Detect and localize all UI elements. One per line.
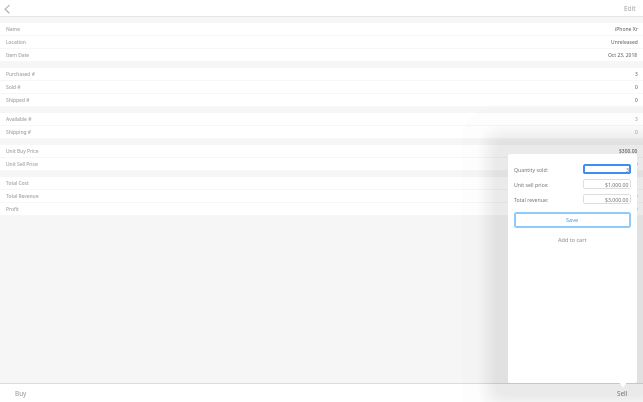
button[interactable]: Back [0,1,16,17]
button[interactable]: Purchased # [0,68,643,81]
button[interactable]: Sell [321,384,643,402]
button[interactable]: Shipping # [0,126,643,139]
button[interactable]: Total Cost [0,177,643,190]
staticText: Add to cart [558,236,587,243]
staticText: 0 [635,97,638,104]
staticText: Unreleased [611,39,638,46]
staticText: Total Revenue [6,193,39,200]
staticText: Purchased # [6,71,35,78]
staticText: $3,000.00 [615,193,638,200]
staticText: $900.00 [619,180,638,187]
staticText: 3 [635,116,638,123]
button[interactable]: Available # [0,113,643,126]
staticText: $3,000.00 [605,196,629,203]
staticText: Save [566,216,579,224]
staticText: 0 [635,84,638,91]
button[interactable]: Sold # [0,81,643,94]
button[interactable]: Location [0,36,643,49]
staticText: Quantity sold: [514,166,548,173]
button[interactable]: $1,000.00 [583,179,631,189]
button[interactable]: Total Revenue [0,190,643,203]
staticText: 3 [635,71,638,78]
staticText: Sell [617,389,628,398]
staticText: $1,000.00 [605,181,629,188]
staticText: Edit [624,4,636,13]
button[interactable]: 3 [583,164,631,174]
staticText: Sold # [6,84,21,91]
button[interactable]: Unit Sell Price [0,158,643,171]
staticText: Unit Buy Price [6,148,39,155]
staticText: $2,100.00 [615,206,638,213]
staticText: Shipped # [6,97,30,104]
staticText: Name [6,26,20,33]
button[interactable]: Name [0,23,643,36]
button[interactable]: Profit [0,203,643,216]
button[interactable]: Shipped # [0,94,643,107]
button[interactable]: Unit Buy Price [0,145,643,158]
button[interactable]: Save [514,212,631,228]
button[interactable]: Edit [624,4,636,13]
staticText: Unit Sell Price [6,161,38,168]
button[interactable]: Buy [0,384,321,402]
staticText: Total revenue: [514,196,549,203]
staticText: Total Cost [6,180,29,187]
staticText: Oct 23, 2018 [608,52,638,59]
staticText: Shipping # [6,129,31,136]
button[interactable]: Item Date [0,49,643,62]
staticText: 3 [626,166,629,173]
staticText: Location [6,39,26,46]
staticText: Item Date [6,52,30,59]
staticText: Buy [15,389,27,398]
staticText: iPhone Xr [615,26,638,33]
staticText: Profit [6,206,19,213]
staticText: Available # [6,116,32,123]
staticText: 0 [635,129,638,136]
button[interactable]: Add to cart [514,228,631,250]
staticText: $300.00 [619,148,638,155]
staticText: Unit sell price: [514,181,549,188]
staticText: $1,000.00 [615,161,638,168]
button[interactable]: $3,000.00 [583,194,631,204]
